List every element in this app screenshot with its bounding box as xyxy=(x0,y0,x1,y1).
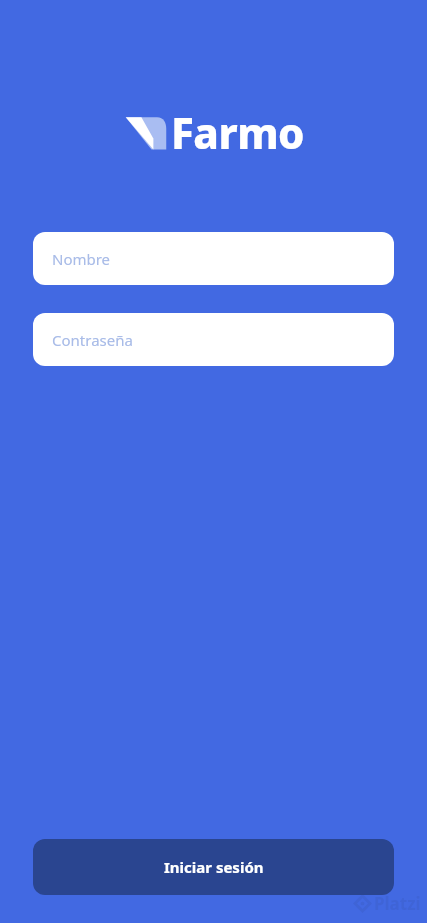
staticText: Platzi xyxy=(374,892,421,915)
button[interactable]: Iniciar sesión xyxy=(33,839,394,895)
button[interactable]: Nombre xyxy=(33,232,394,285)
other: Farmo logo xyxy=(123,110,169,156)
staticText: Contraseña xyxy=(52,330,133,350)
staticText: Farmo xyxy=(171,104,305,161)
staticText: Nombre xyxy=(52,249,111,269)
button[interactable]: Contraseña xyxy=(33,313,394,366)
staticText: Iniciar sesión xyxy=(164,857,264,877)
